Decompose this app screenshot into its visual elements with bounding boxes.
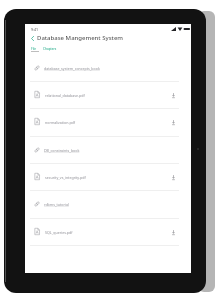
staticText: rdbms_tutorial bbox=[44, 202, 69, 207]
button[interactable]: SQL_queries.pdf bbox=[25, 218, 191, 245]
staticText: Chapters bbox=[43, 47, 57, 51]
button[interactable]: Download bbox=[168, 117, 178, 127]
button[interactable]: Download bbox=[168, 227, 178, 237]
staticText: database_system_concepts_book bbox=[44, 66, 100, 71]
staticText: security_vs_integrity.pdf bbox=[45, 175, 86, 180]
staticText: Database Mangement System bbox=[37, 34, 124, 42]
staticText: SQL_queries.pdf bbox=[45, 230, 73, 235]
button[interactable]: database_system_concepts_book bbox=[25, 54, 191, 81]
button[interactable]: Download bbox=[168, 90, 178, 100]
staticText: File bbox=[31, 47, 37, 51]
button[interactable]: relational_database.pdf bbox=[25, 81, 191, 108]
button[interactable]: rdbms_tutorial bbox=[25, 190, 191, 217]
button[interactable]: File bbox=[30, 45, 40, 53]
staticText: relational_database.pdf bbox=[45, 93, 85, 98]
button[interactable]: Back bbox=[29, 35, 36, 42]
button[interactable]: DB_constraints_book bbox=[25, 136, 191, 163]
staticText: DB_constraints_book bbox=[44, 148, 80, 153]
button[interactable]: normalization.pdf bbox=[25, 108, 191, 135]
button[interactable]: Chapters bbox=[42, 45, 59, 53]
staticText: 9:41 bbox=[31, 27, 39, 32]
button[interactable]: security_vs_integrity.pdf bbox=[25, 163, 191, 190]
staticText: normalization.pdf bbox=[45, 120, 76, 125]
button[interactable]: Download bbox=[168, 172, 178, 182]
